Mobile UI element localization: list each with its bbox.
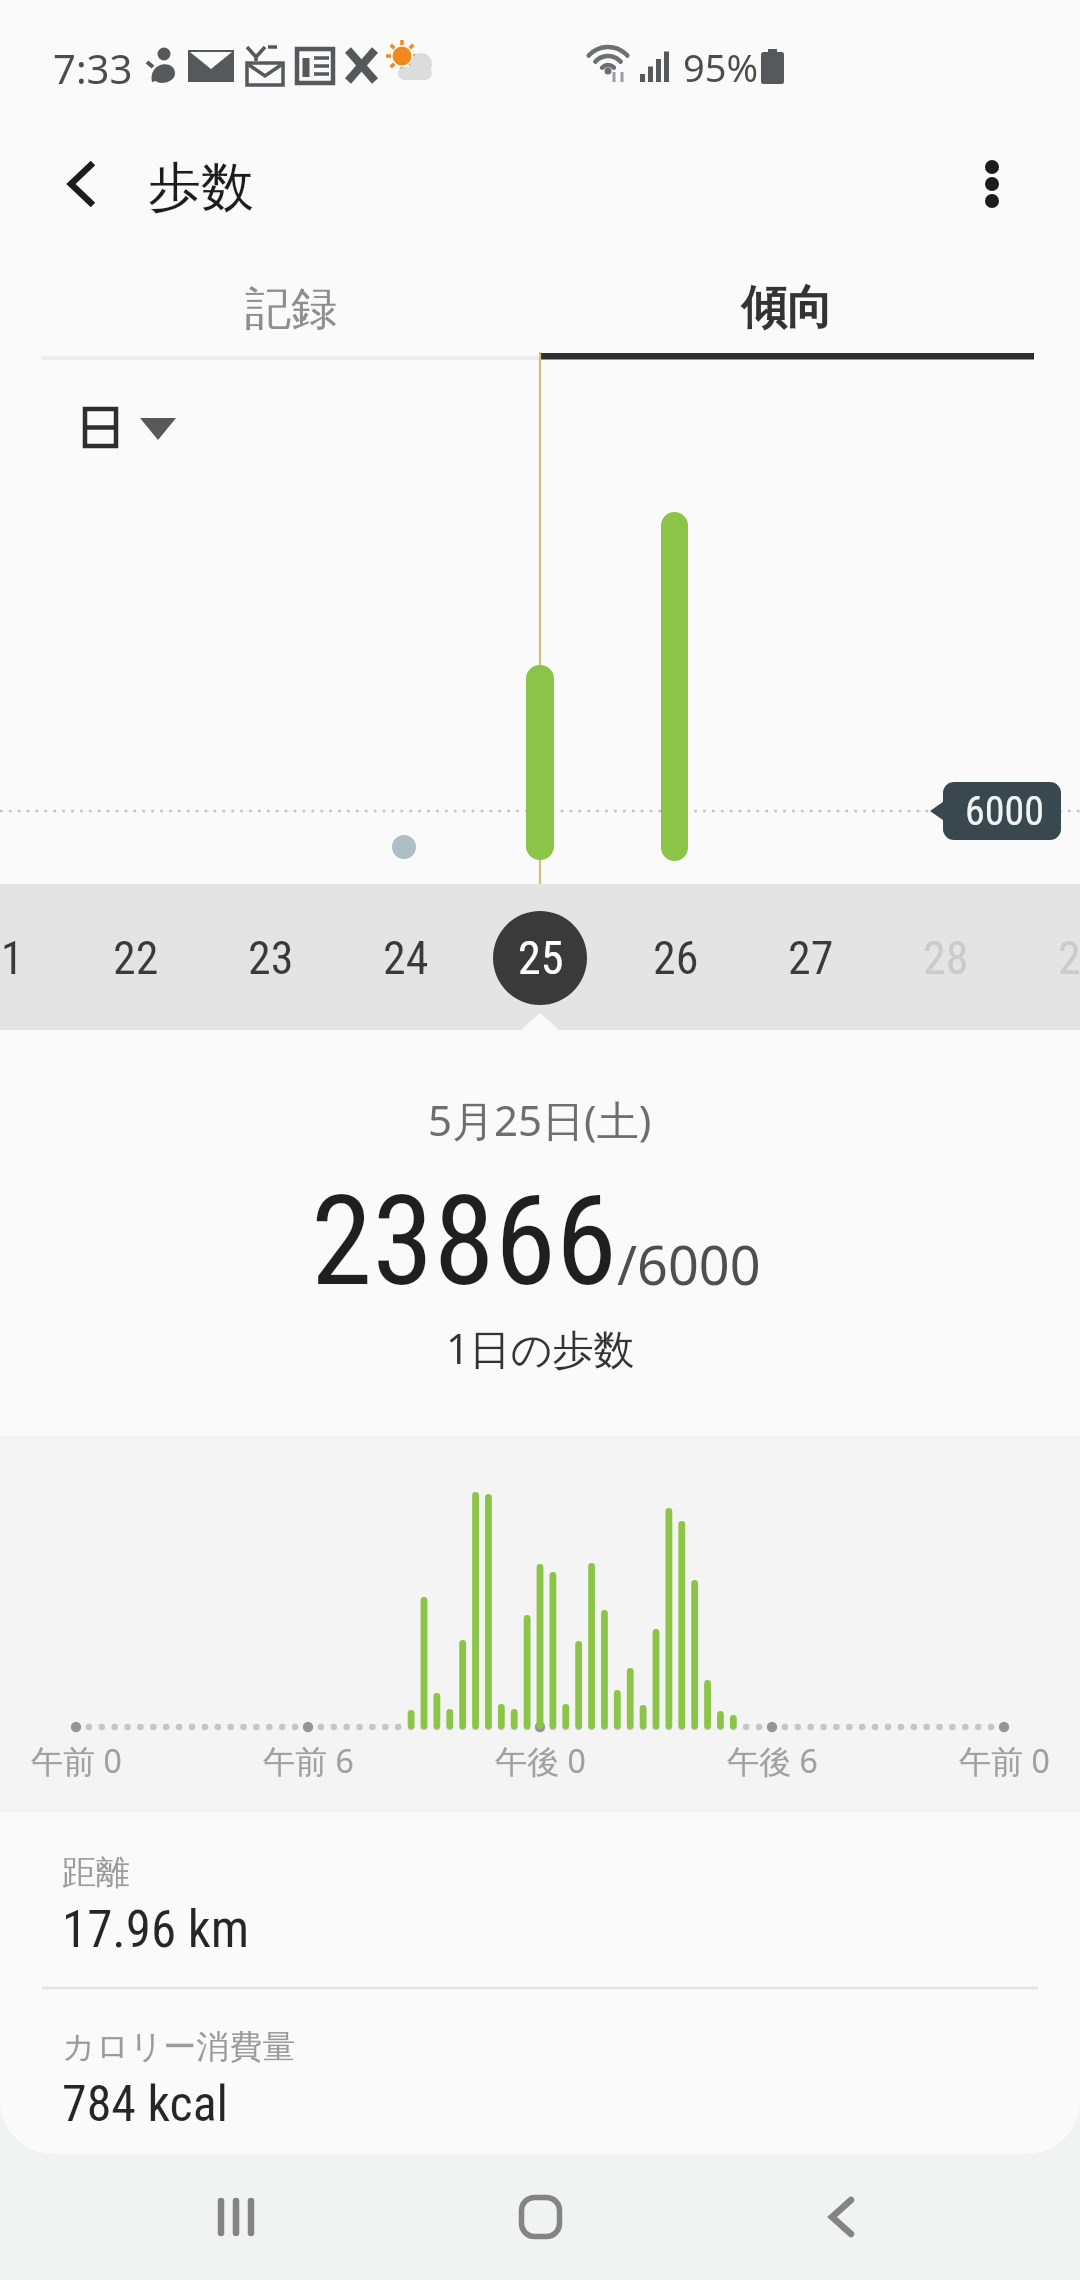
staticText: 距離	[62, 1851, 130, 1894]
button[interactable]: 傾向	[540, 248, 1034, 352]
button[interactable]: 25	[481, 905, 601, 1011]
button[interactable]: 24	[346, 905, 466, 1011]
staticText: 17.96 km	[62, 1900, 250, 1960]
staticText: 25	[518, 931, 564, 985]
staticText: 午前 0	[31, 1739, 122, 1783]
button[interactable]: 記録	[42, 248, 540, 352]
button[interactable]: カロリー消費量	[0, 1987, 1080, 2154]
button[interactable]: 28	[886, 905, 1006, 1011]
button[interactable]: 26	[616, 905, 736, 1011]
button[interactable]: More options	[932, 124, 1052, 244]
button[interactable]: 27	[751, 905, 871, 1011]
staticText: 27	[788, 931, 834, 985]
button[interactable]: Home	[450, 2154, 630, 2280]
staticText: 歩数	[148, 154, 254, 221]
button[interactable]: 23	[211, 905, 331, 1011]
button[interactable]: 距離	[0, 1812, 1080, 1987]
staticText: 21	[0, 931, 24, 985]
staticText: 記録	[245, 280, 337, 338]
staticText: 5月25日(土)	[428, 1091, 652, 1148]
button[interactable]: Period: day	[60, 386, 200, 454]
staticText: /6000	[617, 1227, 761, 1301]
button[interactable]: Recents	[146, 2154, 326, 2280]
staticText: 784 kcal	[62, 2075, 229, 2134]
staticText: 22	[113, 931, 159, 985]
button[interactable]: Back	[22, 124, 142, 244]
staticText: 7:33	[53, 41, 133, 95]
button[interactable]: 22	[76, 905, 196, 1011]
staticText: 6000	[965, 788, 1044, 835]
staticText: 28	[923, 931, 969, 985]
staticText: 午後 6	[727, 1739, 818, 1783]
button[interactable]: Back	[751, 2154, 931, 2280]
button[interactable]: 29	[1021, 905, 1080, 1011]
staticText: 23	[248, 931, 294, 985]
staticText: 95%	[683, 41, 759, 93]
staticText: 23866	[311, 1169, 618, 1314]
staticText: 24	[383, 931, 429, 985]
staticText: 29	[1058, 931, 1080, 985]
staticText: 26	[653, 931, 699, 985]
staticText: 午後 0	[495, 1739, 586, 1783]
staticText: 午前 6	[263, 1739, 354, 1783]
staticText: 傾向	[741, 279, 833, 337]
staticText: カロリー消費量	[62, 2026, 296, 2068]
staticText: 1日の歩数	[446, 1320, 635, 1376]
staticText: 午前 0	[959, 1739, 1050, 1783]
button[interactable]: 21	[0, 905, 61, 1011]
